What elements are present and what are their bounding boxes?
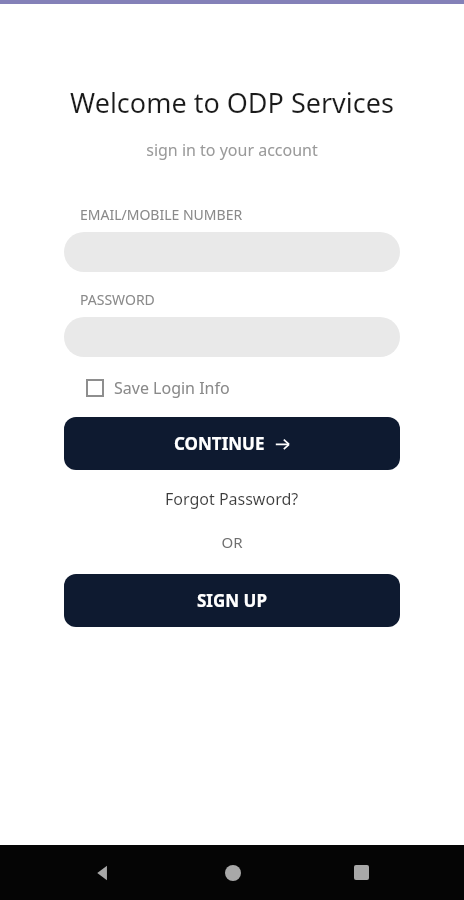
staticText: Save Login Info — [114, 377, 230, 399]
button[interactable]: CONTINUE — [64, 417, 400, 470]
button[interactable] — [64, 317, 400, 357]
button[interactable]: Recent apps — [334, 845, 389, 900]
staticText: Forgot Password? — [165, 488, 299, 510]
staticText: EMAIL/MOBILE NUMBER — [80, 205, 243, 224]
button[interactable]: SIGN UP — [64, 574, 400, 627]
staticText: CONTINUE — [174, 432, 265, 455]
staticText: Welcome to ODP Services — [64, 84, 400, 121]
button[interactable]: Back — [75, 845, 130, 900]
button[interactable]: Forgot Password? — [64, 488, 400, 510]
button[interactable]: Home — [205, 845, 260, 900]
staticText: PASSWORD — [80, 290, 155, 309]
button[interactable]: Save Login Info — [86, 377, 230, 399]
staticText: sign in to your account — [64, 139, 400, 161]
staticText: SIGN UP — [197, 589, 267, 612]
staticText: OR — [64, 532, 400, 552]
button[interactable] — [64, 232, 400, 272]
